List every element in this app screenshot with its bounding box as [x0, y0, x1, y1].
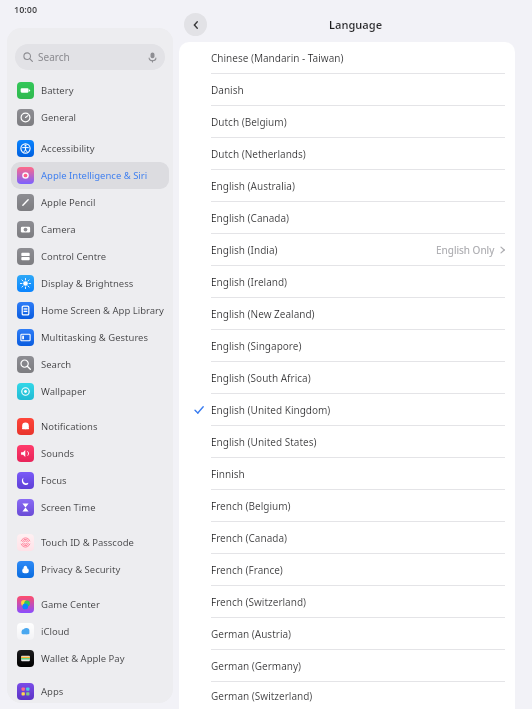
staticText: Control Centre: [41, 250, 107, 263]
staticText: Wallpaper: [41, 385, 87, 398]
button[interactable]: Focus: [11, 467, 169, 494]
button[interactable]: Apps: [11, 680, 169, 703]
button[interactable]: Screen Time: [11, 494, 169, 521]
staticText: Apple Pencil: [41, 196, 96, 209]
staticText: French (Belgium): [211, 499, 291, 513]
button[interactable]: Chinese (Mandarin - Taiwan): [179, 42, 515, 74]
button[interactable]: Search: [15, 44, 165, 70]
staticText: English (United Kingdom): [211, 403, 331, 417]
button[interactable]: Multitasking & Gestures: [11, 324, 169, 351]
button[interactable]: Battery: [11, 77, 169, 104]
button[interactable]: Touch ID & Passcode: [11, 529, 169, 556]
button[interactable]: English (New Zealand): [179, 298, 515, 330]
staticText: English (Ireland): [211, 275, 288, 289]
button[interactable]: Accessibility: [11, 135, 169, 162]
button[interactable]: English (Singapore): [179, 330, 515, 362]
staticText: Search: [38, 50, 70, 64]
button[interactable]: General: [11, 104, 169, 131]
staticText: Focus: [41, 474, 67, 487]
button[interactable]: Notifications: [11, 413, 169, 440]
button[interactable]: Display & Brightness: [11, 270, 169, 297]
staticText: Language: [329, 17, 383, 32]
staticText: Accessibility: [41, 142, 95, 155]
staticText: Apps: [41, 685, 64, 698]
staticText: French (Canada): [211, 531, 287, 545]
staticText: English (United States): [211, 435, 317, 449]
staticText: German (Switzerland): [211, 689, 313, 703]
button[interactable]: English (Ireland): [179, 266, 515, 298]
button[interactable]: German (Austria): [179, 618, 515, 650]
staticText: English Only: [436, 243, 495, 257]
button[interactable]: Game Center: [11, 591, 169, 618]
button[interactable]: Home Screen & App Library: [11, 297, 169, 324]
button[interactable]: Back: [184, 13, 207, 36]
staticText: Privacy & Security: [41, 563, 121, 576]
button[interactable]: English (South Africa): [179, 362, 515, 394]
staticText: Dutch (Netherlands): [211, 147, 306, 161]
button[interactable]: Sounds: [11, 440, 169, 467]
button[interactable]: Apple Pencil: [11, 189, 169, 216]
staticText: English (Canada): [211, 211, 290, 225]
staticText: Dutch (Belgium): [211, 115, 287, 129]
button[interactable]: Wallpaper: [11, 378, 169, 405]
button[interactable]: Camera: [11, 216, 169, 243]
button[interactable]: Finnish: [179, 458, 515, 490]
staticText: Apple Intelligence & Siri: [41, 169, 148, 182]
staticText: 10:00: [14, 3, 38, 15]
staticText: English (New Zealand): [211, 307, 315, 321]
staticText: English (Australia): [211, 179, 295, 193]
button[interactable]: English (India): [179, 234, 515, 266]
button[interactable]: Privacy & Security: [11, 556, 169, 583]
button[interactable]: Danish: [179, 74, 515, 106]
staticText: iCloud: [41, 625, 70, 638]
staticText: General: [41, 111, 77, 124]
staticText: English (South Africa): [211, 371, 311, 385]
staticText: German (Austria): [211, 627, 292, 641]
button[interactable]: Wallet & Apple Pay: [11, 645, 169, 672]
staticText: Wallet & Apple Pay: [41, 652, 125, 665]
button[interactable]: Dutch (Belgium): [179, 106, 515, 138]
button[interactable]: Search: [11, 351, 169, 378]
staticText: French (Switzerland): [211, 595, 307, 609]
button[interactable]: English (United States): [179, 426, 515, 458]
staticText: English (Singapore): [211, 339, 302, 353]
staticText: Camera: [41, 223, 76, 236]
staticText: English (India): [211, 243, 278, 257]
button[interactable]: French (Canada): [179, 522, 515, 554]
button[interactable]: German (Germany): [179, 650, 515, 682]
staticText: Game Center: [41, 598, 100, 611]
button[interactable]: Apple Intelligence & Siri: [11, 162, 169, 189]
staticText: Battery: [41, 84, 74, 97]
staticText: Multitasking & Gestures: [41, 331, 149, 344]
button[interactable]: English (Australia): [179, 170, 515, 202]
staticText: Danish: [211, 83, 244, 97]
button[interactable]: French (Switzerland): [179, 586, 515, 618]
button[interactable]: English (Canada): [179, 202, 515, 234]
button[interactable]: iCloud: [11, 618, 169, 645]
staticText: Chinese (Mandarin - Taiwan): [211, 51, 344, 65]
button[interactable]: French (Belgium): [179, 490, 515, 522]
button[interactable]: French (France): [179, 554, 515, 586]
staticText: Screen Time: [41, 501, 96, 514]
staticText: Home Screen & App Library: [41, 304, 164, 317]
staticText: Search: [41, 358, 72, 371]
staticText: German (Germany): [211, 659, 302, 673]
button[interactable]: Dutch (Netherlands): [179, 138, 515, 170]
staticText: French (France): [211, 563, 283, 577]
staticText: Display & Brightness: [41, 277, 134, 290]
staticText: Touch ID & Passcode: [41, 536, 134, 549]
staticText: Notifications: [41, 420, 98, 433]
button[interactable]: English (United Kingdom): [179, 394, 515, 426]
staticText: Finnish: [211, 467, 245, 481]
staticText: Sounds: [41, 447, 75, 460]
button[interactable]: Control Centre: [11, 243, 169, 270]
button[interactable]: German (Switzerland): [179, 682, 515, 709]
